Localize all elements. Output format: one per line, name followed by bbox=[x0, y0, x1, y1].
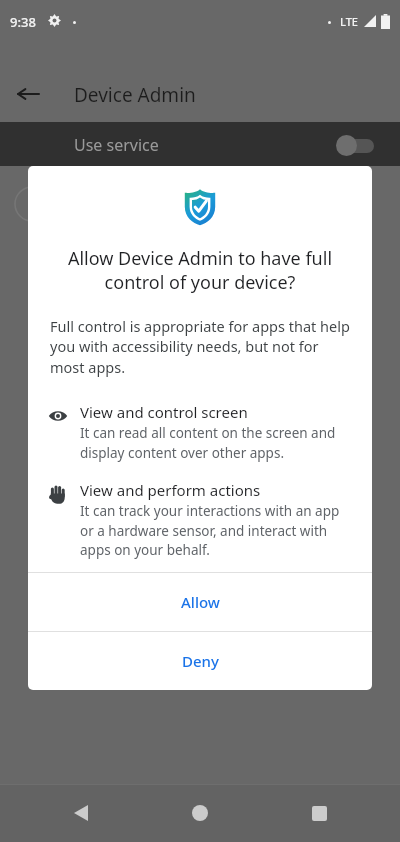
staticText: LTE bbox=[340, 14, 358, 29]
staticText: Allow Device Admin to have full control … bbox=[50, 246, 350, 294]
button[interactable]: Home bbox=[185, 798, 215, 828]
button[interactable]: Use service bbox=[0, 122, 400, 166]
button[interactable]: Back bbox=[66, 798, 96, 828]
button[interactable]: Back bbox=[10, 76, 46, 112]
button[interactable]: Allow bbox=[28, 573, 372, 631]
staticText: Allow bbox=[181, 592, 220, 612]
staticText: 9:38 bbox=[10, 13, 36, 31]
staticText: Full control is appropriate for apps tha… bbox=[50, 316, 350, 378]
staticText: Deny bbox=[182, 651, 219, 671]
button[interactable]: Recent apps bbox=[304, 798, 334, 828]
staticText: Device Admin bbox=[74, 82, 196, 108]
staticText: It can read all content on the screen an… bbox=[80, 424, 350, 462]
staticText: It can track your interactions with an a… bbox=[80, 502, 350, 559]
button[interactable]: Deny bbox=[28, 632, 372, 690]
staticText: View and perform actions bbox=[80, 480, 261, 500]
staticText: View and control screen bbox=[80, 402, 248, 422]
staticText: Use service bbox=[74, 134, 159, 156]
